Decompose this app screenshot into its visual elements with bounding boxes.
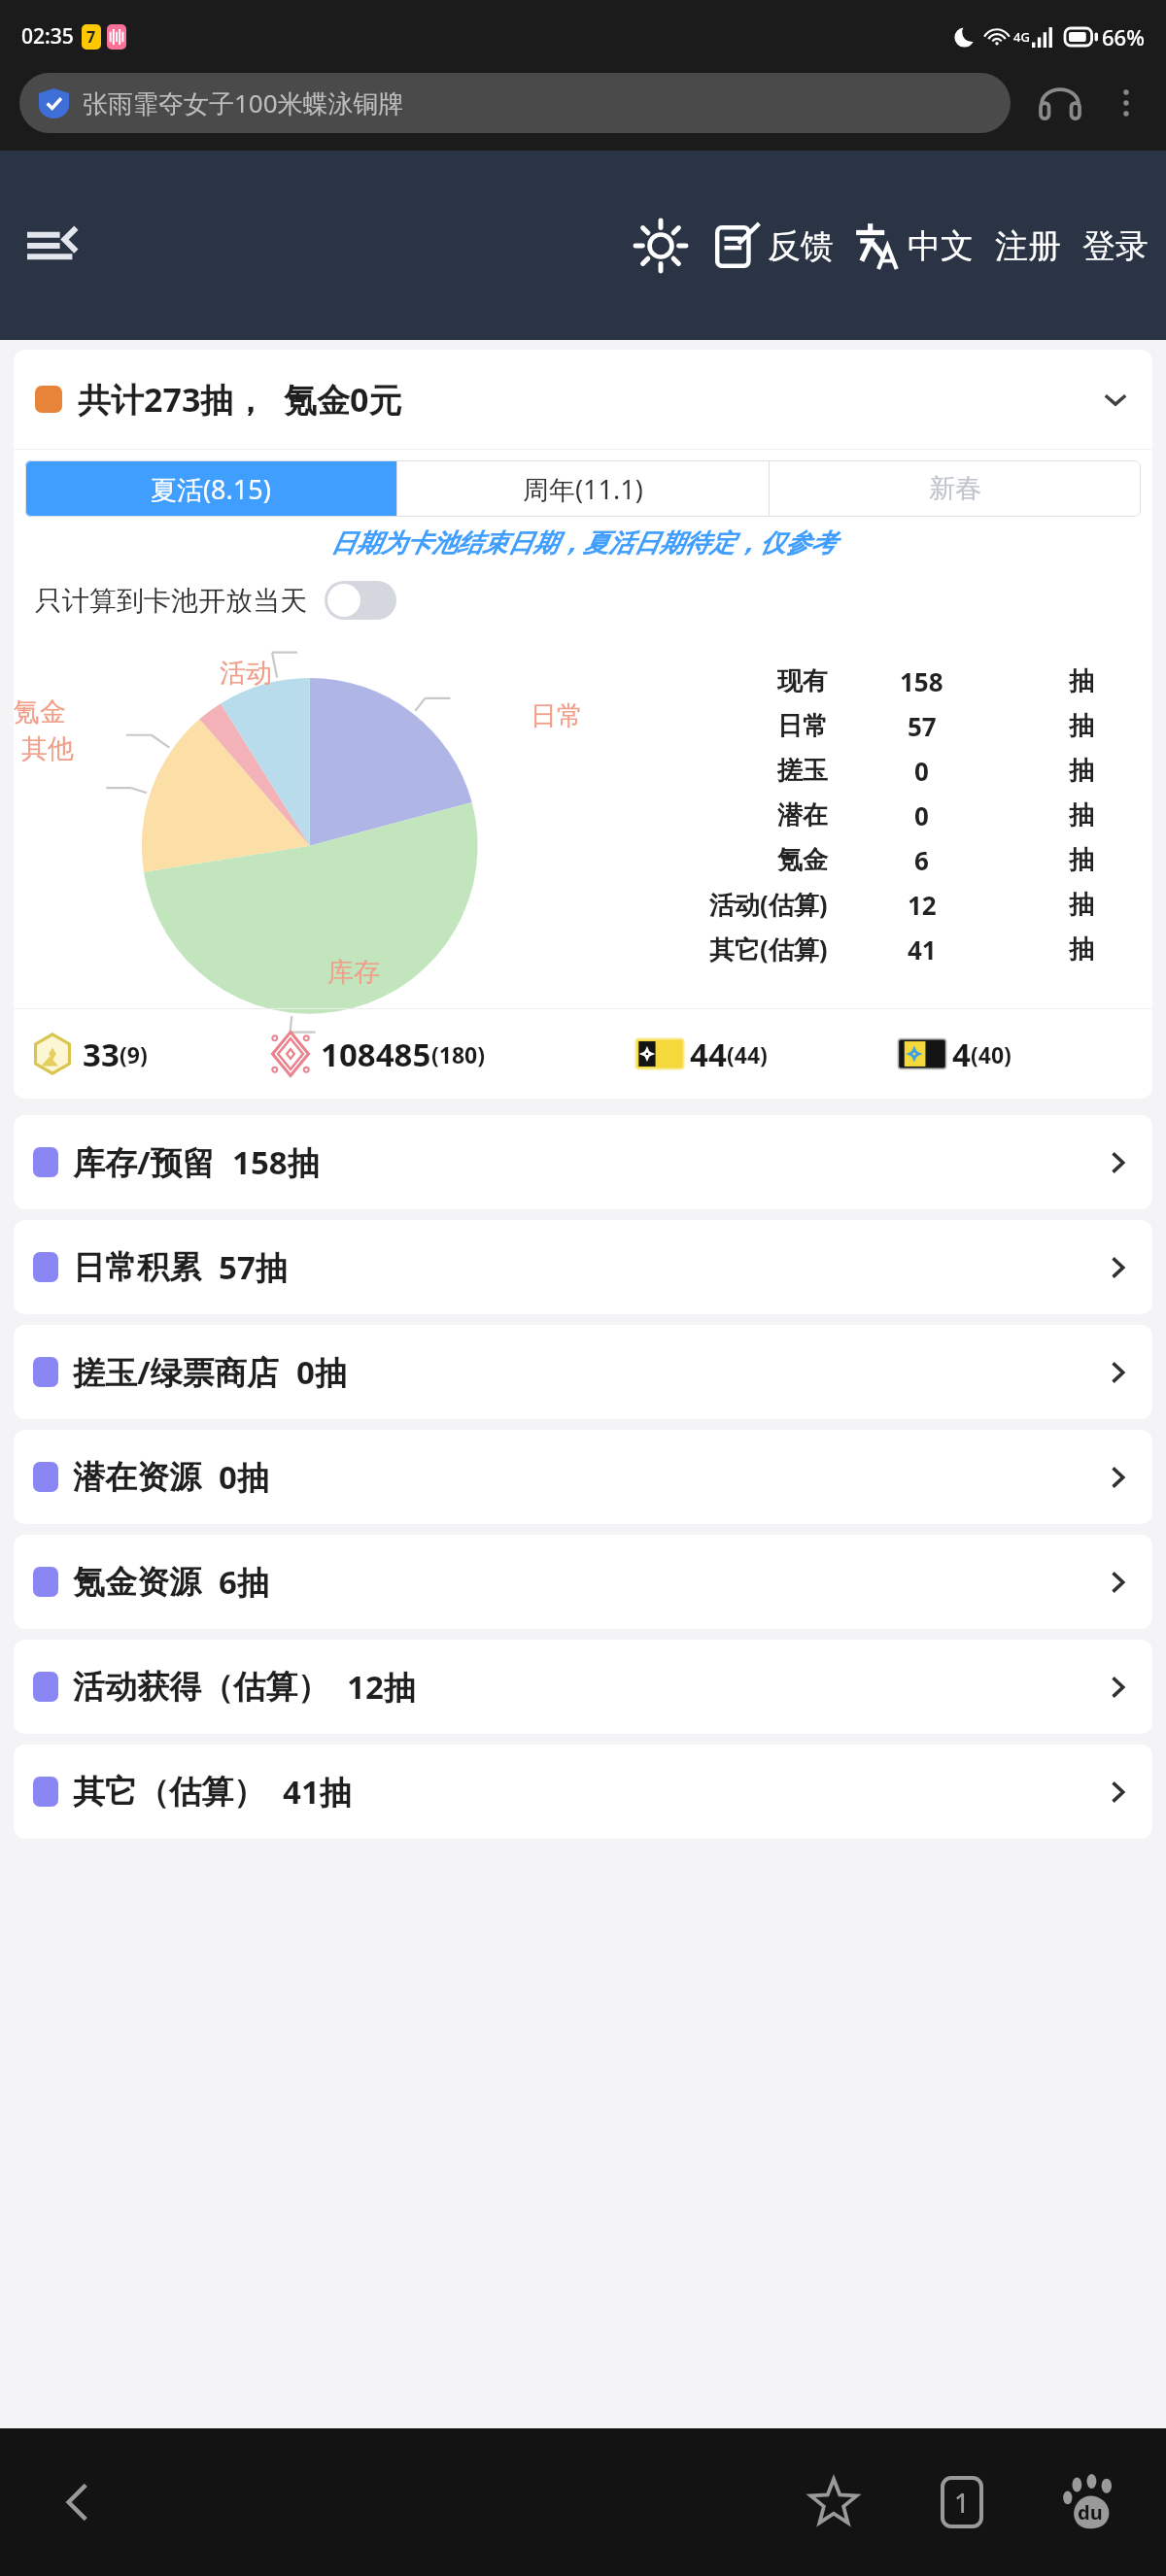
button[interactable]: 反馈 bbox=[712, 220, 834, 271]
button[interactable]: Bookmark bbox=[787, 2456, 880, 2549]
staticText: 氪金资源 bbox=[73, 1562, 201, 1603]
button[interactable]: 登录 bbox=[1082, 225, 1149, 267]
staticText: 4G bbox=[1013, 28, 1030, 46]
staticText: 1 bbox=[954, 2485, 970, 2521]
staticText: 夏活(8.15) bbox=[151, 471, 271, 507]
staticText: 其它（估算） bbox=[73, 1772, 265, 1813]
button[interactable]: 108485 bbox=[263, 1009, 633, 1099]
staticText: 搓玉/绿票商店 bbox=[73, 1350, 279, 1394]
staticText: 02:35 bbox=[21, 22, 74, 51]
staticText: 库存 bbox=[327, 956, 380, 989]
button[interactable]: 日常积累 bbox=[14, 1220, 1152, 1314]
staticText: 其它(估算) bbox=[709, 932, 828, 966]
staticText: 4 bbox=[952, 1033, 971, 1076]
button[interactable]: 库存/预留 bbox=[14, 1115, 1152, 1209]
button[interactable]: 注册 bbox=[995, 225, 1061, 267]
staticText: 库存/预留 bbox=[73, 1140, 215, 1184]
staticText: 66% bbox=[1102, 22, 1145, 51]
staticText: 活动(估算) bbox=[709, 887, 828, 922]
button[interactable]: 张雨霏夺女子100米蝶泳铜牌 bbox=[19, 73, 1011, 133]
staticText: 张雨霏夺女子100米蝶泳铜牌 bbox=[83, 85, 404, 120]
staticText: 反馈 bbox=[768, 225, 834, 267]
staticText: (9) bbox=[120, 1039, 148, 1069]
staticText: 抽 bbox=[1069, 889, 1094, 921]
staticText: 抽 bbox=[1069, 844, 1094, 876]
button[interactable]: 4 bbox=[895, 1009, 1141, 1099]
button[interactable]: Only count until pool opens bbox=[325, 581, 396, 620]
staticText: 活动获得（估算） bbox=[73, 1667, 329, 1708]
staticText: 共计273抽， 氪金0元 bbox=[78, 377, 402, 422]
staticText: 抽 bbox=[1069, 755, 1094, 787]
button[interactable]: 44 bbox=[633, 1009, 895, 1099]
button[interactable]: 共计273抽， 氪金0元 bbox=[14, 350, 1152, 449]
staticText: 抽 bbox=[1069, 933, 1094, 966]
button[interactable]: 周年(11.1) bbox=[397, 460, 769, 517]
staticText: 6抽 bbox=[219, 1560, 269, 1604]
staticText: 抽 bbox=[1069, 710, 1094, 742]
staticText: 中文 bbox=[908, 225, 974, 267]
staticText: 其他 bbox=[21, 732, 74, 765]
staticText: 158 bbox=[900, 664, 943, 698]
staticText: 活动 bbox=[220, 657, 272, 690]
button[interactable]: 33 bbox=[25, 1009, 263, 1099]
staticText: 0抽 bbox=[219, 1455, 269, 1499]
button[interactable]: 夏活(8.15) bbox=[25, 460, 396, 517]
staticText: 57抽 bbox=[219, 1245, 288, 1289]
staticText: (180) bbox=[431, 1039, 486, 1069]
staticText: 6 bbox=[914, 843, 929, 877]
staticText: 41 bbox=[908, 932, 937, 966]
button[interactable]: Headphones bbox=[1036, 79, 1084, 127]
staticText: 12 bbox=[908, 888, 937, 922]
button[interactable]: 氪金资源 bbox=[14, 1535, 1152, 1629]
staticText: 只计算到卡池开放当天 bbox=[35, 584, 307, 618]
staticText: 12抽 bbox=[347, 1665, 416, 1709]
staticText: 0 bbox=[914, 754, 929, 788]
button[interactable]: Baidu home bbox=[1044, 2456, 1137, 2549]
staticText: 0抽 bbox=[296, 1350, 347, 1394]
staticText: 0 bbox=[914, 798, 929, 832]
staticText: 潜在 bbox=[777, 799, 828, 831]
staticText: 57 bbox=[908, 709, 937, 743]
button[interactable]: 其它（估算） bbox=[14, 1745, 1152, 1839]
button[interactable]: More options bbox=[1106, 83, 1147, 123]
staticText: 现有 bbox=[777, 665, 828, 697]
staticText: 搓玉 bbox=[777, 755, 828, 787]
button[interactable]: Menu bbox=[19, 207, 97, 285]
staticText: 7 bbox=[86, 26, 96, 48]
staticText: 41抽 bbox=[283, 1770, 352, 1813]
staticText: 登录 bbox=[1082, 225, 1149, 267]
staticText: 日期为卡池结束日期，夏活日期待定，仅参考 bbox=[14, 527, 1152, 559]
staticText: 氪金 bbox=[14, 695, 66, 729]
staticText: 注册 bbox=[995, 225, 1061, 267]
staticText: 日常 bbox=[531, 699, 583, 732]
staticText: 158抽 bbox=[232, 1140, 320, 1184]
staticText: 108485 bbox=[321, 1033, 431, 1076]
staticText: 周年(11.1) bbox=[523, 471, 643, 507]
staticText: 日常 bbox=[777, 710, 828, 742]
button[interactable]: 活动获得（估算） bbox=[14, 1640, 1152, 1734]
button[interactable]: Theme bbox=[631, 216, 691, 276]
button[interactable]: 搓玉/绿票商店 bbox=[14, 1325, 1152, 1419]
staticText: 氪金 bbox=[777, 844, 828, 876]
button[interactable]: 新春 bbox=[770, 460, 1141, 517]
staticText: 44 bbox=[690, 1033, 727, 1076]
staticText: 潜在资源 bbox=[73, 1457, 201, 1498]
button[interactable]: 中文 bbox=[853, 220, 974, 271]
staticText: (40) bbox=[971, 1039, 1012, 1069]
staticText: (44) bbox=[727, 1039, 768, 1069]
staticText: 抽 bbox=[1069, 799, 1094, 831]
staticText: 日常积累 bbox=[73, 1247, 201, 1288]
button[interactable]: Back bbox=[35, 2458, 122, 2546]
button[interactable]: Tabs bbox=[915, 2456, 1009, 2549]
button[interactable]: 潜在资源 bbox=[14, 1430, 1152, 1524]
staticText: 新春 bbox=[929, 472, 981, 505]
staticText: 抽 bbox=[1069, 665, 1094, 697]
staticText: 33 bbox=[83, 1033, 120, 1076]
staticText: du bbox=[1078, 2499, 1103, 2525]
